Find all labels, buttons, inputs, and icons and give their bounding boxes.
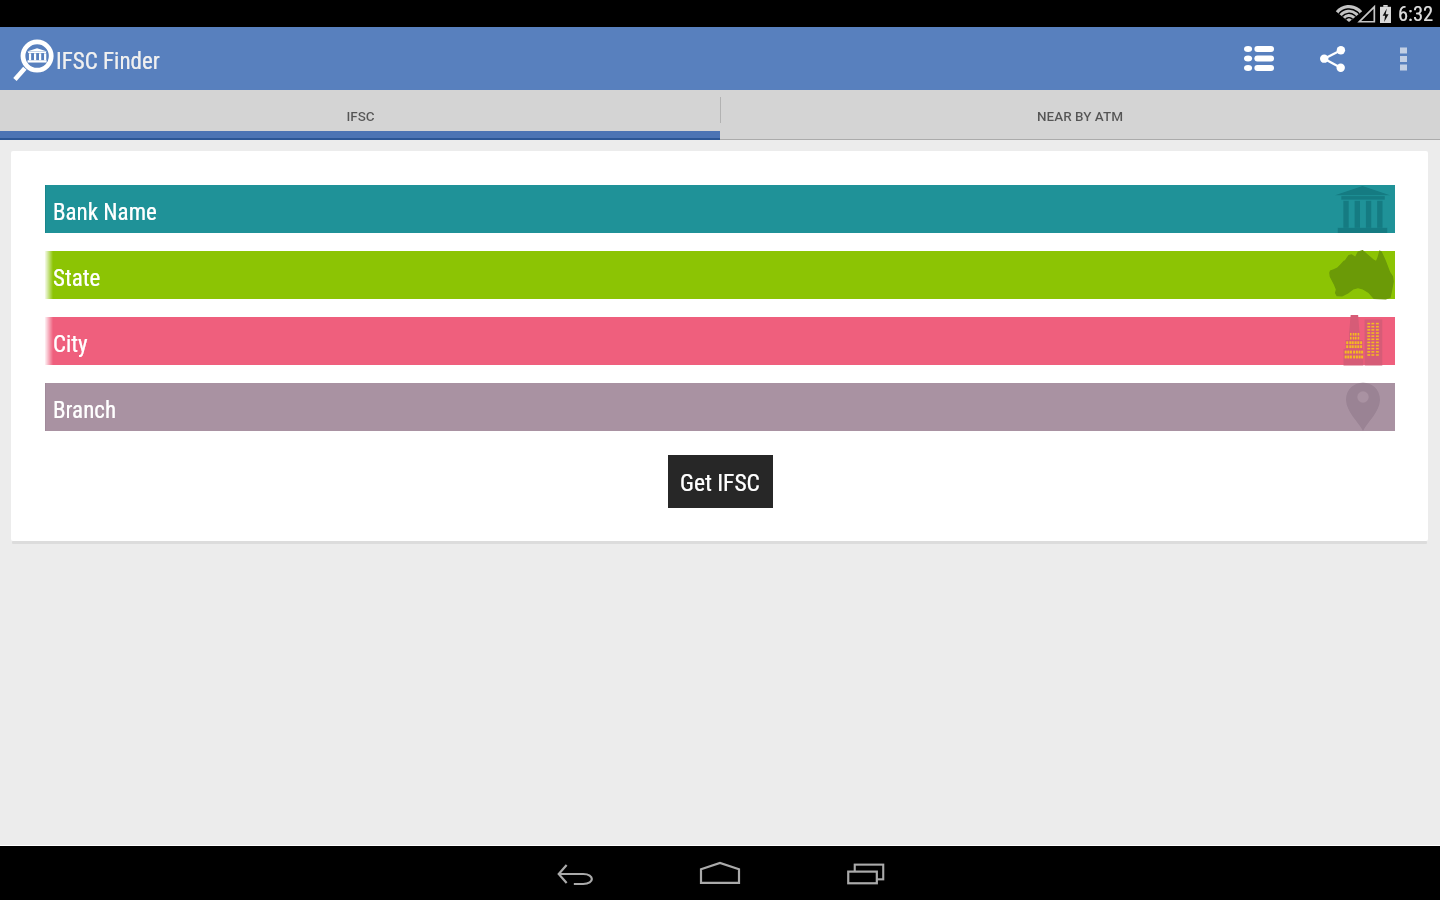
staticText: NEAR BY ATM bbox=[1037, 108, 1123, 124]
staticText: State bbox=[53, 265, 101, 292]
button[interactable]: NEAR BY ATM bbox=[720, 90, 1440, 140]
button[interactable]: IFSC bbox=[0, 90, 720, 140]
staticText: Bank Name bbox=[53, 199, 157, 226]
staticText: IFSC Finder bbox=[56, 48, 160, 75]
button[interactable]: Bank list bbox=[1227, 27, 1291, 90]
button[interactable]: City bbox=[45, 317, 1395, 365]
staticText: Get IFSC bbox=[680, 469, 760, 497]
button[interactable]: Recent apps bbox=[793, 846, 937, 900]
staticText: City bbox=[53, 331, 88, 358]
staticText: Branch bbox=[53, 397, 117, 424]
button[interactable]: Back bbox=[504, 846, 648, 900]
button[interactable]: Bank Name bbox=[45, 185, 1395, 233]
button[interactable]: Share bbox=[1301, 27, 1363, 90]
button[interactable]: Get IFSC bbox=[668, 455, 773, 508]
button[interactable]: Branch bbox=[45, 383, 1395, 431]
staticText: 6:32 bbox=[1398, 2, 1434, 26]
staticText: IFSC bbox=[346, 108, 375, 124]
button[interactable]: State bbox=[45, 251, 1395, 299]
button[interactable]: More options bbox=[1382, 27, 1440, 90]
button[interactable]: Home bbox=[648, 846, 792, 900]
